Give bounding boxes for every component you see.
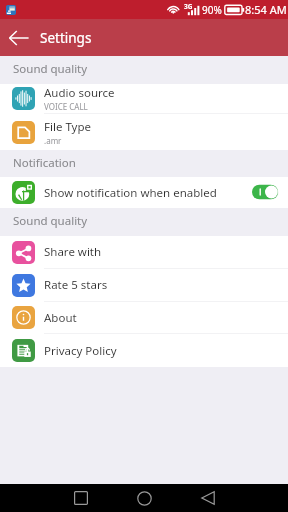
staticText: VOICE CALL <box>44 101 88 112</box>
staticText: Privacy Policy <box>44 343 117 359</box>
button[interactable]: Back <box>185 484 230 512</box>
staticText: Share with <box>44 244 102 260</box>
button[interactable]: Back <box>0 19 37 56</box>
button[interactable]: Show notification when enabled <box>0 177 288 208</box>
staticText: Notification <box>13 155 76 171</box>
button[interactable]: Share with <box>0 236 288 268</box>
button[interactable]: Audio source <box>0 84 288 113</box>
staticText: 90% <box>202 3 222 17</box>
staticText: Sound quality <box>13 61 88 77</box>
button[interactable]: Recent apps <box>58 484 103 512</box>
button[interactable]: Privacy Policy <box>0 334 288 367</box>
button[interactable]: Show notification toggle <box>251 185 278 201</box>
staticText: Settings <box>40 29 92 47</box>
button[interactable]: File Type <box>0 114 288 150</box>
button[interactable]: Rate 5 stars <box>0 269 288 301</box>
staticText: Show notification when enabled <box>44 185 251 201</box>
staticText: 3G <box>184 2 193 11</box>
staticText: .amr <box>44 135 62 146</box>
staticText: 8:54 AM <box>245 2 287 17</box>
staticText: Rate 5 stars <box>44 277 108 293</box>
staticText: About <box>44 310 77 326</box>
staticText: File Type <box>44 119 91 135</box>
button[interactable]: Home <box>122 484 167 512</box>
button[interactable]: About <box>0 302 288 333</box>
staticText: Audio source <box>44 85 115 101</box>
staticText: Sound quality <box>13 213 88 229</box>
